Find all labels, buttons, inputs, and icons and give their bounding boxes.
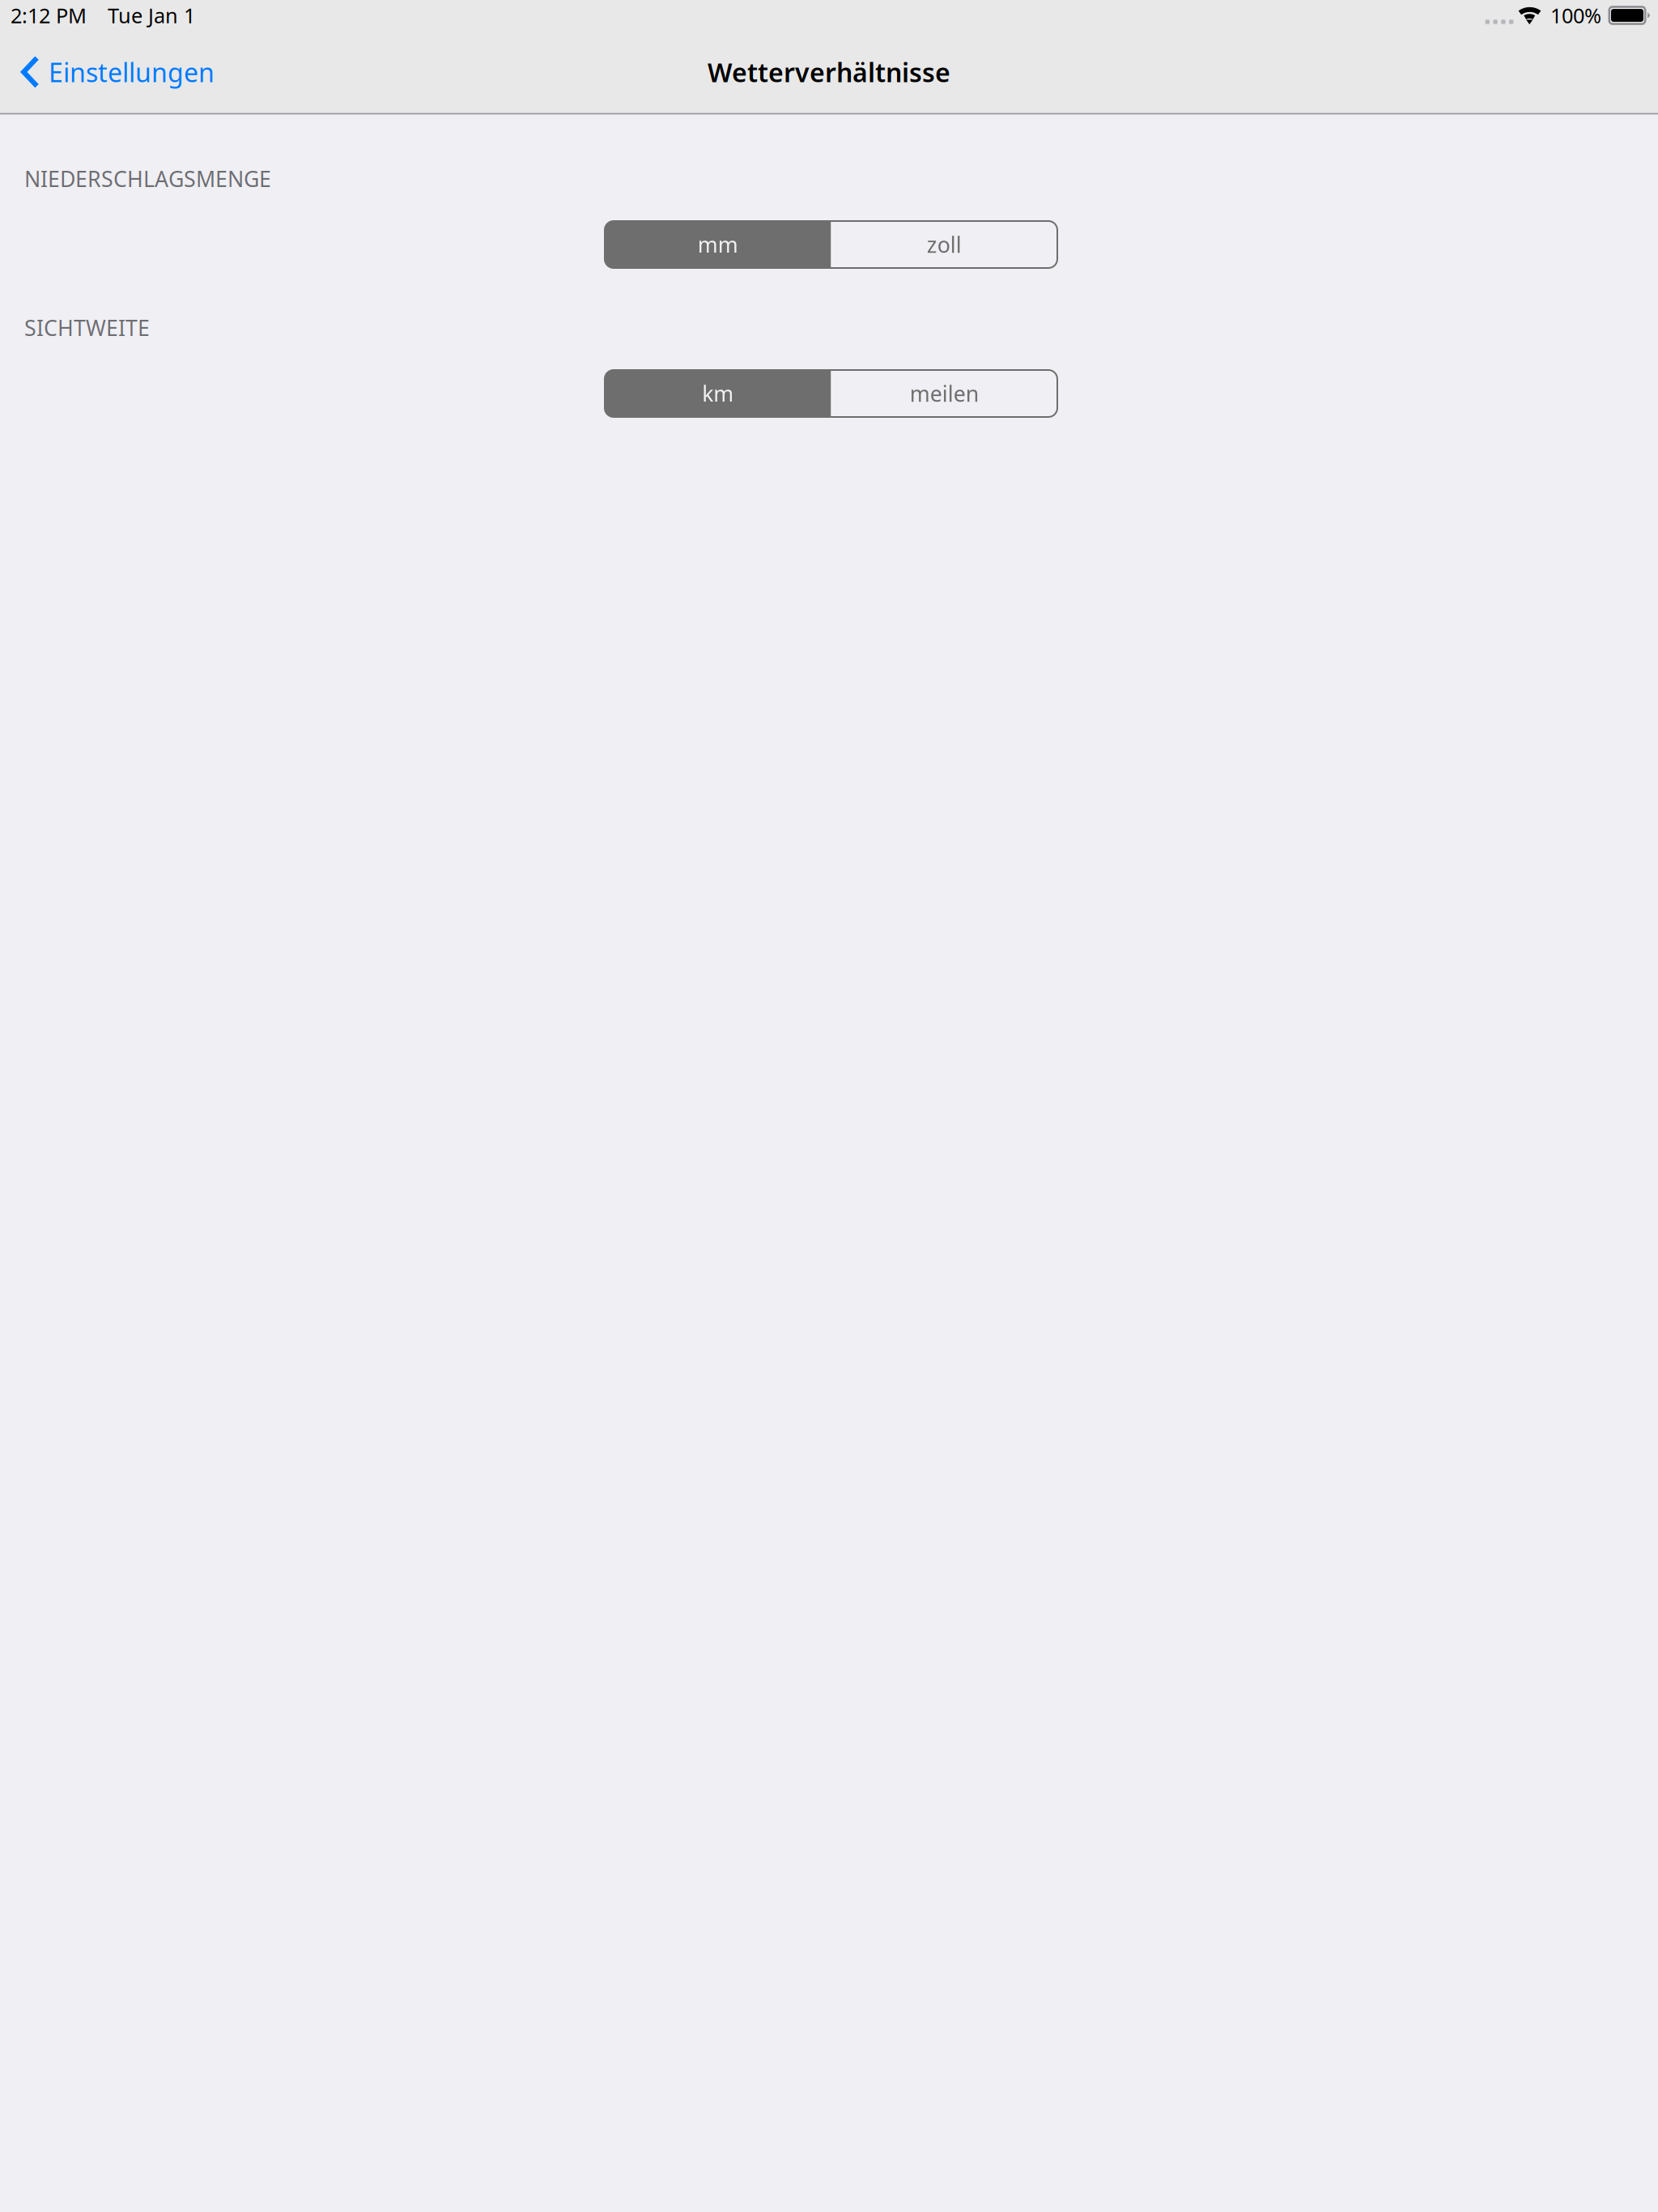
staticText: zoll	[927, 230, 962, 259]
staticText: Einstellungen	[49, 55, 215, 89]
button[interactable]: Einstellungen	[0, 42, 231, 102]
button[interactable]: km	[605, 370, 831, 417]
staticText: Tue Jan 1	[108, 2, 195, 29]
staticText: Wetterverhältnisse	[708, 55, 950, 89]
button[interactable]: zoll	[831, 221, 1057, 268]
button[interactable]: mm	[605, 221, 831, 268]
staticText: NIEDERSCHLAGSMENGE	[24, 164, 271, 193]
staticText: mm	[698, 230, 738, 259]
staticText: 100%	[1550, 2, 1601, 29]
staticText: SICHTWEITE	[24, 313, 150, 342]
staticText: meilen	[910, 379, 979, 408]
button[interactable]: meilen	[831, 370, 1057, 417]
staticText: km	[702, 379, 734, 408]
staticText: 2:12 PM	[11, 2, 87, 29]
